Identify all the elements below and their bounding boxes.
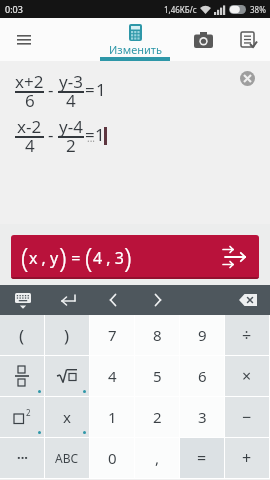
button[interactable]: ABC xyxy=(45,438,89,478)
staticText: y-4 xyxy=(59,115,83,131)
staticText: 2 xyxy=(153,407,162,427)
button[interactable] xyxy=(144,285,172,315)
staticText: + xyxy=(242,447,252,469)
staticText: ( xyxy=(19,324,25,347)
staticText: - xyxy=(48,78,54,101)
staticText: ) xyxy=(59,239,67,276)
staticText: ... xyxy=(17,445,28,463)
staticText: Изменить xyxy=(109,42,162,57)
staticText: 4 , 3 xyxy=(93,247,124,269)
staticText: × xyxy=(242,365,252,387)
button[interactable]: 7 xyxy=(90,315,134,355)
button[interactable] xyxy=(45,356,89,396)
staticText: y-3 xyxy=(59,70,83,86)
button[interactable] xyxy=(54,285,82,315)
button[interactable]: 5 xyxy=(135,356,179,396)
staticText: 1 xyxy=(108,407,117,427)
button[interactable]: , xyxy=(135,438,179,478)
button[interactable] xyxy=(99,285,127,315)
staticText: ( xyxy=(21,239,29,276)
button[interactable]: Изменить xyxy=(100,18,170,61)
button[interactable]: ) xyxy=(45,315,89,355)
staticText: − xyxy=(242,406,252,428)
staticText: x-2 xyxy=(17,115,42,131)
button[interactable] xyxy=(234,25,264,55)
button[interactable]: ÷ xyxy=(225,315,269,355)
staticText: 8 xyxy=(153,325,162,345)
button[interactable] xyxy=(188,25,218,55)
staticText: 9 xyxy=(198,325,207,345)
button[interactable] xyxy=(240,71,255,86)
staticText: 4 xyxy=(66,89,76,105)
button[interactable] xyxy=(234,285,262,315)
button[interactable]: = xyxy=(180,438,224,478)
button[interactable]: 2 xyxy=(0,397,44,437)
button[interactable]: 9 xyxy=(180,315,224,355)
button[interactable]: ( xyxy=(11,235,259,279)
button[interactable]: 3 xyxy=(180,397,224,437)
staticText: = xyxy=(67,247,85,269)
staticText: 6 xyxy=(25,89,35,105)
staticText: ... xyxy=(87,131,96,145)
staticText: = xyxy=(85,78,95,101)
staticText: 1,46КБ/с xyxy=(164,4,197,15)
button[interactable]: 1 xyxy=(90,397,134,437)
staticText: = xyxy=(85,123,95,146)
staticText: ABC xyxy=(55,450,79,466)
button[interactable]: x xyxy=(45,397,89,437)
staticText: 38% xyxy=(250,4,266,15)
staticText: 6 xyxy=(198,366,207,386)
button[interactable]: 0 xyxy=(90,438,134,478)
staticText: 3 xyxy=(198,407,207,427)
staticText: x xyxy=(63,407,71,427)
staticText: ) xyxy=(64,324,70,347)
button[interactable]: + xyxy=(225,438,269,478)
staticText: 0:03 xyxy=(5,3,23,15)
button[interactable]: ( xyxy=(0,315,44,355)
staticText: 7 xyxy=(108,325,117,345)
staticText: 4 xyxy=(108,366,117,386)
button[interactable]: ... xyxy=(0,438,44,478)
button[interactable]: − xyxy=(225,397,269,437)
staticText: ÷ xyxy=(242,324,252,346)
button[interactable] xyxy=(0,356,44,396)
staticText: , xyxy=(155,448,160,468)
staticText: 5 xyxy=(153,366,162,386)
button[interactable]: 6 xyxy=(180,356,224,396)
button[interactable]: × xyxy=(225,356,269,396)
staticText: 4 xyxy=(25,134,35,150)
staticText: ) xyxy=(124,239,132,276)
button[interactable] xyxy=(9,285,37,315)
staticText: x , y xyxy=(29,247,59,269)
button[interactable]: 2 xyxy=(135,397,179,437)
staticText: 2 xyxy=(26,407,31,418)
staticText: - xyxy=(48,123,54,146)
button[interactable]: 4 xyxy=(90,356,134,396)
staticText: 2 xyxy=(66,134,76,150)
staticText: 0 xyxy=(108,448,117,468)
staticText: x+2 xyxy=(15,70,44,86)
staticText: ( xyxy=(85,239,93,276)
button[interactable]: 8 xyxy=(135,315,179,355)
staticText: 1 xyxy=(96,78,106,101)
staticText: = xyxy=(197,447,207,469)
staticText: 1 xyxy=(95,123,105,146)
button[interactable] xyxy=(10,26,38,54)
